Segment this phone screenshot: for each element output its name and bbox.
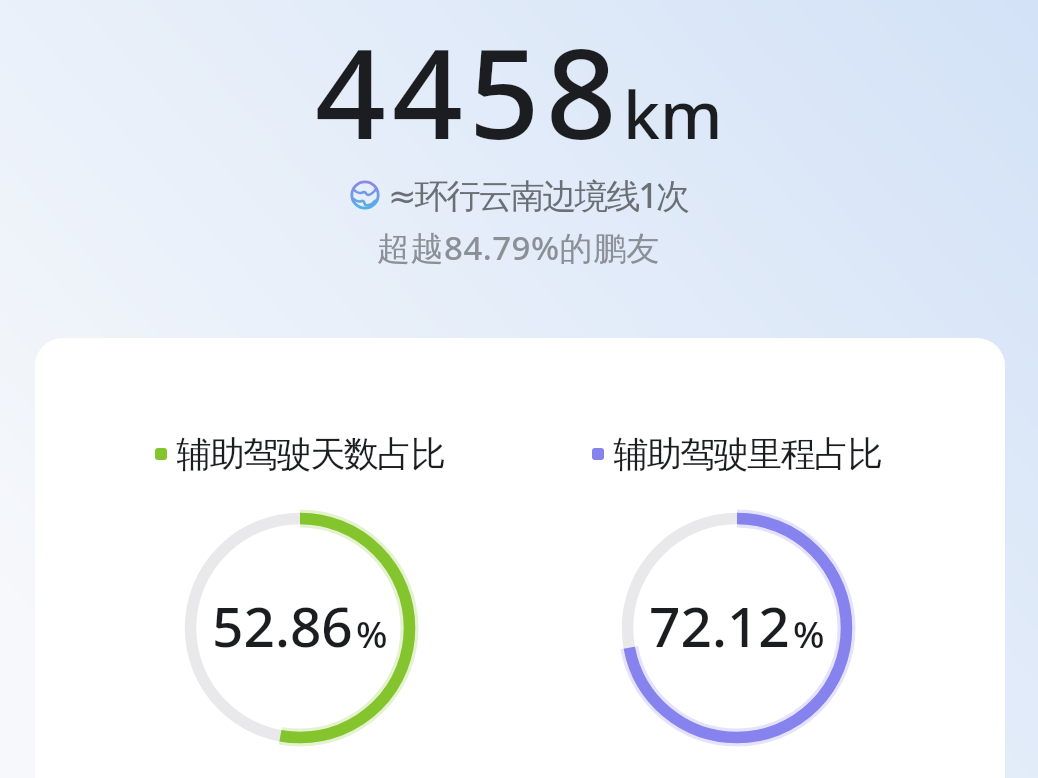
staticText: % bbox=[356, 608, 388, 658]
staticText: 超越84.79%的鹏友 bbox=[377, 225, 661, 270]
staticText: 辅助驾驶天数占比 bbox=[177, 432, 445, 476]
staticText: 4458 bbox=[315, 6, 623, 175]
staticText: ≈环行云南边境线1次 bbox=[388, 172, 688, 218]
staticText: 72.12 bbox=[649, 588, 790, 663]
staticText: % bbox=[793, 608, 825, 658]
staticText: km bbox=[623, 68, 723, 158]
staticText: 辅助驾驶里程占比 bbox=[614, 432, 882, 476]
staticText: 52.86 bbox=[212, 588, 353, 663]
